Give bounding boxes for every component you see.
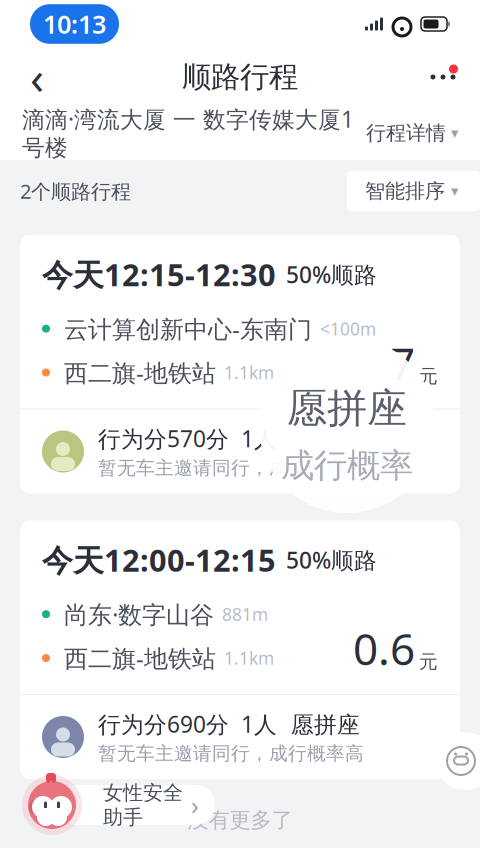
staticText: ▾ xyxy=(451,125,458,141)
button[interactable]: 女性安全助手 xyxy=(22,776,222,834)
button[interactable]: 智能排序 xyxy=(347,171,480,211)
staticText: 50%顺路 xyxy=(286,259,377,289)
staticText: 顺路行程 xyxy=(182,59,298,95)
staticText: 50%顺路 xyxy=(286,545,377,575)
staticText: <100m xyxy=(320,317,376,340)
staticText: 元 xyxy=(419,650,438,673)
staticText: 西二旗-地铁站 xyxy=(64,642,216,674)
staticText: 1.1km xyxy=(224,361,274,384)
staticText: ▾ xyxy=(451,183,458,199)
staticText: 881m xyxy=(222,603,268,626)
staticText: 行为分690分 1人 愿拼座 xyxy=(98,709,360,739)
button[interactable]: 返回 xyxy=(12,52,62,102)
staticText: 7 xyxy=(390,333,415,392)
staticText: 元 xyxy=(419,365,438,388)
staticText: 今天12:00-12:15 xyxy=(42,539,276,580)
staticText: 今天12:15-12:30 xyxy=(42,254,276,295)
staticText: ‹ xyxy=(30,47,44,107)
staticText: 没有更多了 xyxy=(187,807,292,833)
staticText: 暂无车主邀请同行，成行概率高 xyxy=(98,742,364,765)
staticText: 成行概率 xyxy=(281,445,413,486)
staticText: 云计算创新中心-东南门 xyxy=(64,313,312,345)
staticText: 行程详情 xyxy=(366,121,446,145)
staticText: 西二旗-地铁站 xyxy=(64,357,216,388)
button[interactable]: 今天12:15-12:30 xyxy=(20,235,460,493)
staticText: 行为分570分 1人 xyxy=(98,423,277,454)
staticText: 智能排序 xyxy=(365,179,445,203)
staticText: 尚东·数字山谷 xyxy=(64,598,214,630)
button[interactable]: 滴滴·湾流大厦 一 数字传媒大厦1号楼 xyxy=(0,106,480,160)
staticText: 2个顺路行程 xyxy=(20,178,131,204)
staticText: 滴滴·湾流大厦 一 数字传媒大厦1号楼 xyxy=(22,104,354,162)
staticText: 10:13 xyxy=(43,7,106,41)
staticText: 0.6 xyxy=(353,619,415,677)
button[interactable]: 今天12:00-12:15 xyxy=(20,520,460,779)
staticText: 愿拼座 xyxy=(287,384,407,433)
staticText: 1.1km xyxy=(224,646,274,669)
staticText: 暂无车主邀请同行，成行概率高 xyxy=(98,457,364,479)
button[interactable]: 反馈 xyxy=(436,732,480,790)
staticText: 女性安全助手 xyxy=(103,780,183,829)
staticText: › xyxy=(191,788,199,822)
button[interactable]: 更多 xyxy=(418,52,468,102)
